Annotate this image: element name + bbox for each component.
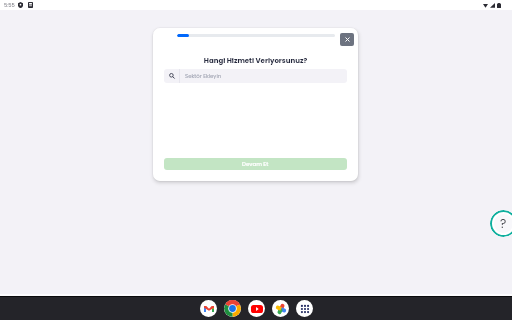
staticText: Hangi Hizmeti Veriyorsunuz? <box>153 56 358 66</box>
button[interactable]: Gmail <box>200 300 217 317</box>
button[interactable]: Kapat <box>340 33 354 46</box>
button[interactable]: Chrome <box>224 300 241 317</box>
staticText: Sektör Ekleyin <box>185 72 222 80</box>
staticText: Devam Et <box>242 160 269 168</box>
button[interactable]: Google Fotoğraflar <box>272 300 289 317</box>
button[interactable]: YouTube <box>248 300 265 317</box>
staticText: ? <box>500 215 507 232</box>
staticText: 5:55 <box>4 2 15 9</box>
button[interactable]: Sektör Ekleyin <box>164 69 347 83</box>
button[interactable]: Yardım <box>490 210 512 237</box>
button[interactable]: Tüm uygulamalar <box>296 300 313 317</box>
button[interactable]: Devam Et <box>164 158 347 170</box>
